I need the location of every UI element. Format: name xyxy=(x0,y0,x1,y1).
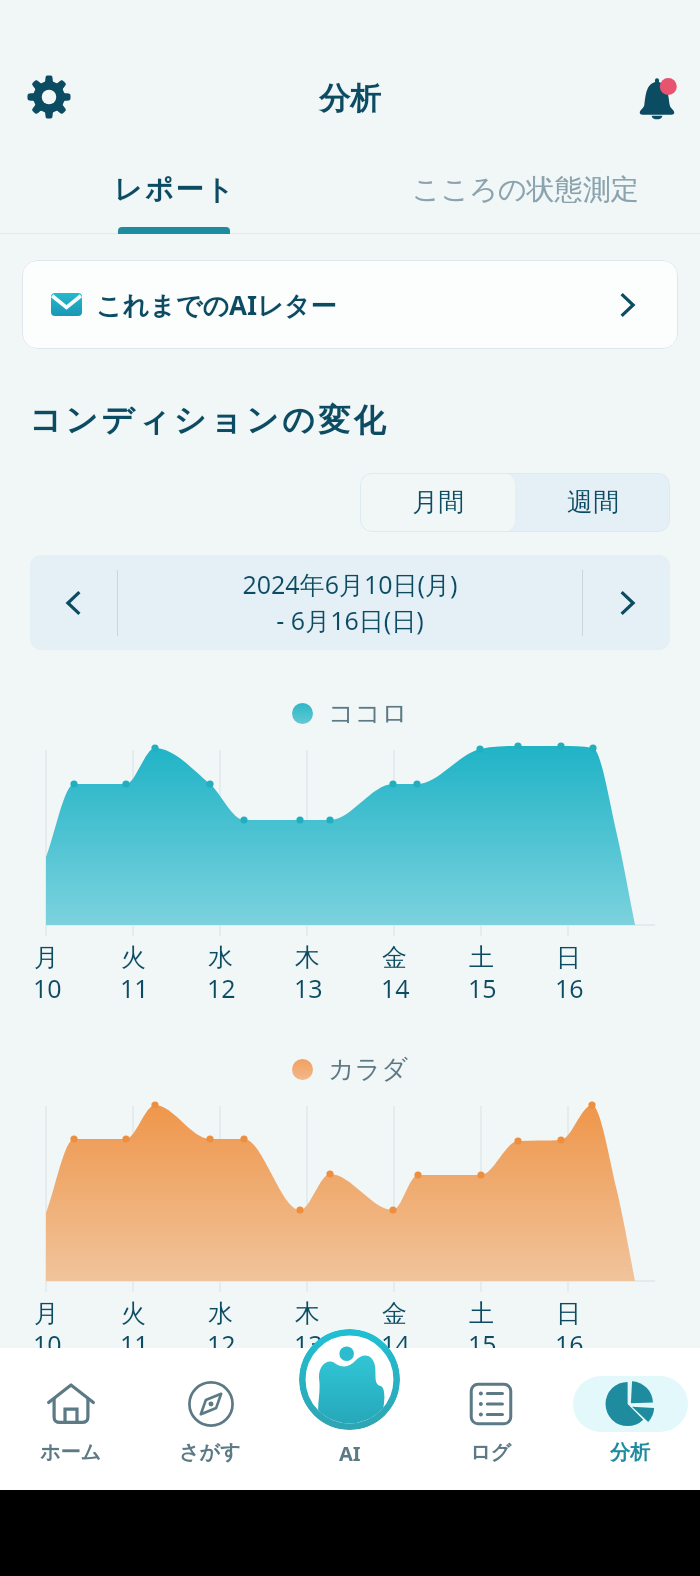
staticText: 12 xyxy=(207,1327,236,1361)
button[interactable]: さがす xyxy=(140,1348,280,1490)
staticText: ログ xyxy=(470,1440,511,1465)
staticText: 土 xyxy=(469,1298,494,1329)
staticText: 木 xyxy=(295,942,320,973)
button[interactable]: レポート xyxy=(0,145,350,234)
staticText: 14 xyxy=(381,1327,410,1361)
staticText: 10 xyxy=(33,1327,62,1361)
staticText: 16 xyxy=(555,971,584,1005)
staticText: 日 xyxy=(556,942,581,973)
staticText: 水 xyxy=(208,1298,233,1329)
staticText: 木 xyxy=(295,1298,320,1329)
staticText: 日 xyxy=(556,1298,581,1329)
staticText: レポート xyxy=(114,172,236,207)
button[interactable]: Notifications xyxy=(629,69,685,125)
staticText: 月 xyxy=(34,1298,59,1329)
staticText: 週間 xyxy=(567,486,619,519)
button[interactable]: 週間 xyxy=(515,473,670,532)
staticText: 分析 xyxy=(0,79,700,118)
staticText: 14 xyxy=(381,971,410,1005)
staticText: ホーム xyxy=(40,1440,101,1465)
staticText: 2024年6月10日(月) - 6月16日(日) xyxy=(242,567,458,638)
staticText: AI xyxy=(339,1440,361,1467)
staticText: 火 xyxy=(121,1298,146,1329)
staticText: 16 xyxy=(555,1327,584,1361)
staticText: 11 xyxy=(120,971,149,1005)
button[interactable]: ログ xyxy=(420,1348,560,1490)
staticText: 土 xyxy=(469,942,494,973)
button[interactable]: 分析 xyxy=(560,1348,700,1490)
staticText: ココロ xyxy=(328,697,408,730)
staticText: コンディションの変化 xyxy=(29,400,389,440)
staticText: 12 xyxy=(207,971,236,1005)
staticText: 金 xyxy=(382,942,407,973)
staticText: これまでのAIレター xyxy=(96,287,337,323)
staticText: 月 xyxy=(34,942,59,973)
staticText: 火 xyxy=(121,942,146,973)
button[interactable]: AI xyxy=(299,1329,400,1430)
staticText: 水 xyxy=(208,942,233,973)
staticText: 15 xyxy=(468,1327,497,1361)
staticText: 15 xyxy=(468,971,497,1005)
button[interactable]: Next week xyxy=(583,555,670,650)
staticText: さがす xyxy=(179,1440,241,1465)
button[interactable]: Settings xyxy=(21,69,77,125)
staticText: 10 xyxy=(33,971,62,1005)
button[interactable]: こころの状態測定 xyxy=(350,145,700,234)
staticText: 分析 xyxy=(610,1440,650,1465)
button[interactable]: 月間 xyxy=(360,473,515,532)
button[interactable]: ホーム xyxy=(0,1348,140,1490)
staticText: 金 xyxy=(382,1298,407,1329)
button[interactable]: Previous week xyxy=(30,555,117,650)
staticText: 月間 xyxy=(412,486,464,519)
staticText: 13 xyxy=(294,1327,323,1361)
staticText: こころの状態測定 xyxy=(412,172,639,207)
staticText: 11 xyxy=(120,1327,149,1361)
staticText: カラダ xyxy=(328,1053,408,1086)
staticText: 13 xyxy=(294,971,323,1005)
button[interactable]: これまでのAIレター xyxy=(22,260,678,349)
